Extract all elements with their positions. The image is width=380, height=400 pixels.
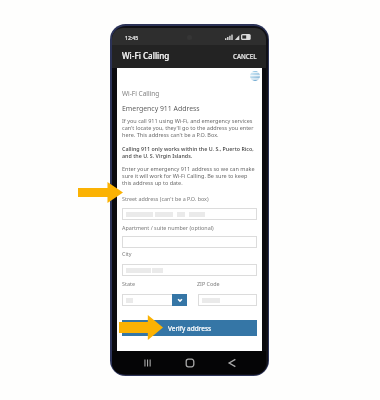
staticText: City — [122, 250, 132, 257]
button[interactable]: Recent apps — [140, 351, 156, 374]
staticText: CANCEL — [233, 52, 257, 60]
staticText: If you call 911 using Wi-Fi, and emergen… — [122, 117, 257, 138]
staticText: 12:45 — [125, 34, 139, 41]
staticText: Emergency 911 Address — [122, 104, 200, 113]
button[interactable]: Home — [182, 351, 198, 374]
button[interactable] — [122, 236, 257, 248]
button[interactable] — [122, 294, 187, 306]
staticText: Calling 911 only works within the U. S.,… — [122, 145, 257, 159]
staticText: Wi-Fi Calling — [122, 89, 160, 98]
staticText: Wi-Fi Calling — [122, 50, 170, 61]
button[interactable]: Verify address — [122, 320, 257, 336]
button[interactable] — [198, 294, 257, 306]
button[interactable]: Back — [224, 351, 240, 374]
button[interactable] — [122, 264, 257, 276]
staticText: Enter your emergency 911 address so we c… — [122, 165, 257, 186]
staticText: Street address (can't be a P.O. box) — [122, 195, 209, 202]
staticText: ZIP Code — [197, 280, 220, 287]
staticText: Apartment / suite number (optional) — [122, 224, 214, 231]
button[interactable]: CANCEL — [230, 47, 260, 64]
button[interactable] — [122, 208, 257, 220]
staticText: State — [122, 280, 135, 287]
staticText: Verify address — [168, 324, 212, 333]
